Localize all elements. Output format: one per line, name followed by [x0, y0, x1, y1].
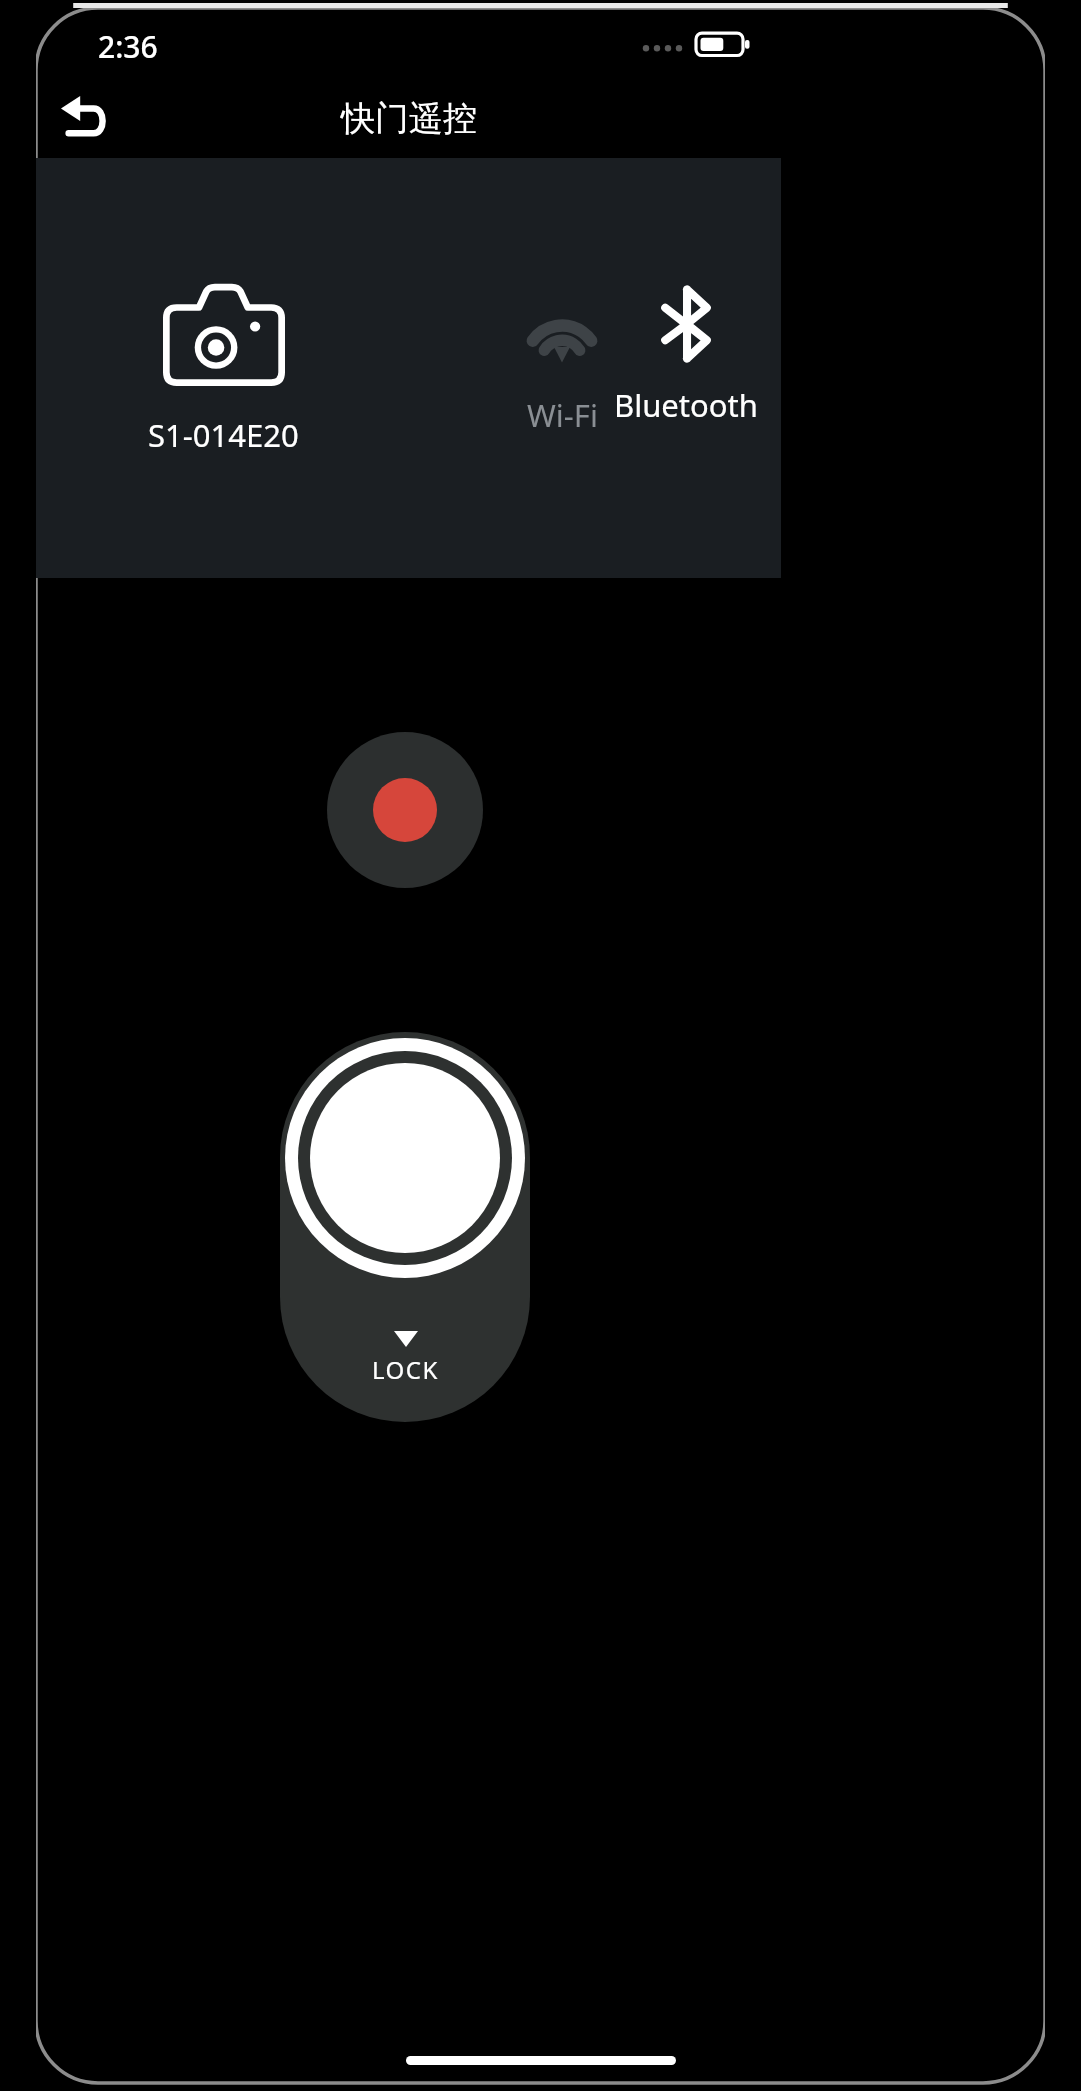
- staticText: Bluetooth: [614, 384, 758, 426]
- staticText: 2:36: [98, 26, 158, 67]
- button[interactable]: Shutter lock: [280, 1032, 530, 1422]
- staticText: LOCK: [372, 1353, 439, 1386]
- button[interactable]: Bluetooth: [598, 288, 774, 426]
- button[interactable]: Record: [327, 732, 483, 888]
- button[interactable]: Back: [36, 78, 132, 158]
- button[interactable]: S1-014E20: [148, 286, 299, 456]
- staticText: 快门遥控: [341, 97, 477, 140]
- staticText: Wi-Fi: [527, 394, 598, 436]
- staticText: S1-014E20: [148, 414, 299, 456]
- button[interactable]: Shutter: [285, 1038, 525, 1278]
- button[interactable]: Wi-Fi: [488, 298, 636, 436]
